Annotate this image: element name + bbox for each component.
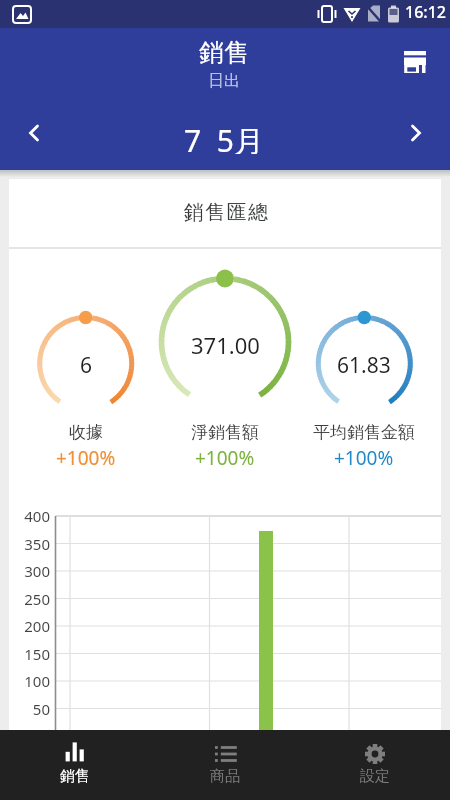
staticText: +100% bbox=[195, 445, 255, 471]
staticText: 61.83 bbox=[337, 351, 391, 380]
button[interactable] bbox=[160, 116, 288, 158]
staticText: +100% bbox=[56, 445, 116, 471]
staticText: 250 bbox=[24, 589, 50, 609]
staticText: 商品 bbox=[210, 767, 240, 786]
staticText: 銷售 bbox=[60, 767, 90, 786]
staticText: 設定 bbox=[360, 767, 390, 786]
staticText: 銷售 bbox=[199, 37, 249, 68]
staticText: 銷售匯總 bbox=[183, 200, 269, 225]
staticText: 50 bbox=[32, 699, 50, 719]
staticText: 100 bbox=[24, 671, 50, 691]
staticText: 日出 bbox=[208, 71, 240, 91]
staticText: 7 5月 bbox=[184, 120, 264, 154]
button[interactable]: 銷售 bbox=[25, 730, 125, 800]
staticText: 平均銷售金額 bbox=[313, 422, 415, 443]
staticText: 150 bbox=[24, 644, 50, 664]
staticText: 371.00 bbox=[191, 330, 260, 360]
staticText: 200 bbox=[24, 616, 50, 636]
staticText: 400 bbox=[24, 506, 50, 526]
button[interactable] bbox=[394, 117, 434, 157]
staticText: 16:12 bbox=[405, 1, 446, 23]
staticText: 350 bbox=[24, 534, 50, 554]
staticText: +100% bbox=[334, 445, 394, 471]
button[interactable]: 商品 bbox=[175, 730, 275, 800]
staticText: 6 bbox=[80, 351, 93, 380]
button[interactable] bbox=[397, 45, 435, 83]
staticText: 300 bbox=[24, 561, 50, 581]
staticText: 淨銷售額 bbox=[191, 422, 259, 443]
button[interactable]: 設定 bbox=[325, 730, 425, 800]
button[interactable] bbox=[16, 117, 56, 157]
staticText: 收據 bbox=[69, 422, 103, 443]
